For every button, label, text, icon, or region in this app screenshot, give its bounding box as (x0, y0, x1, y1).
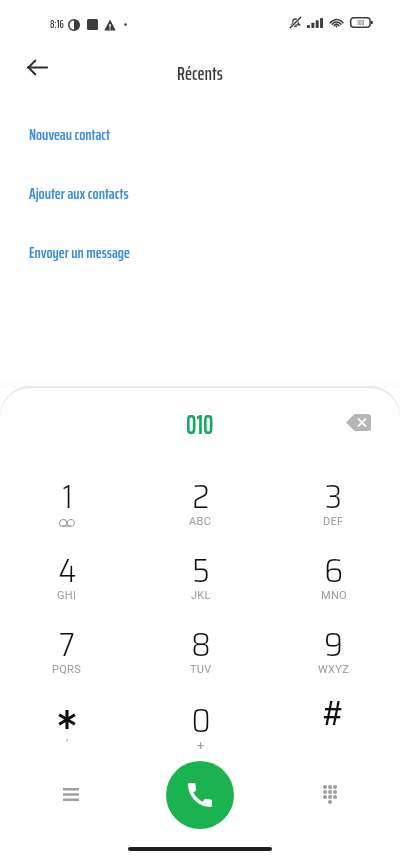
staticText: GHI (57, 589, 77, 602)
button[interactable]: 1 (0, 456, 134, 530)
button[interactable]: Ajouter aux contacts (0, 164, 400, 223)
button[interactable]: Dialpad (307, 772, 352, 817)
button[interactable]: 2 (134, 456, 267, 530)
button[interactable]: Back (20, 50, 54, 84)
staticText: 0 (191, 695, 211, 747)
staticText: 1 (62, 471, 73, 523)
staticText: 7 (59, 619, 75, 671)
button[interactable]: Backspace (341, 405, 375, 439)
staticText: Ajouter aux contacts (29, 181, 129, 206)
button[interactable]: Nouveau contact (0, 105, 400, 164)
button[interactable]: Envoyer un message (0, 223, 400, 282)
staticText: 8:16 (50, 16, 64, 33)
staticText: Récents (177, 58, 223, 88)
staticText: 2 (192, 471, 210, 523)
button[interactable]: , (0, 678, 134, 752)
button[interactable]: 7 (0, 604, 134, 678)
button[interactable]: Call log options (48, 772, 93, 817)
staticText: JKL (191, 589, 211, 602)
staticText: 100 (357, 17, 365, 28)
staticText: DEF (323, 515, 344, 528)
staticText: 5 (192, 545, 210, 597)
staticText: TUV (190, 663, 212, 676)
staticText: 6 (324, 545, 343, 597)
staticText: # (322, 685, 345, 740)
button[interactable]: 3 (267, 456, 400, 530)
button[interactable]: 0 (134, 678, 267, 752)
staticText: PQRS (52, 663, 82, 676)
button[interactable]: # (267, 678, 400, 752)
staticText: 9 (324, 619, 343, 671)
button[interactable]: 6 (267, 530, 400, 604)
staticText: Nouveau contact (29, 122, 110, 147)
button[interactable]: 4 (0, 530, 134, 604)
staticText: 8 (191, 619, 211, 671)
button[interactable]: 9 (267, 604, 400, 678)
staticText: ABC (189, 515, 212, 528)
staticText: Envoyer un message (29, 240, 130, 265)
button[interactable]: 5 (134, 530, 267, 604)
staticText: WXYZ (318, 663, 350, 676)
staticText: MNO (321, 589, 347, 602)
staticText: 4 (58, 545, 77, 597)
staticText: , (66, 730, 69, 743)
staticText: 010 (186, 404, 214, 445)
button[interactable]: 8 (134, 604, 267, 678)
staticText: 3 (325, 471, 342, 523)
button[interactable]: Call (166, 761, 234, 829)
staticText: + (197, 738, 205, 753)
